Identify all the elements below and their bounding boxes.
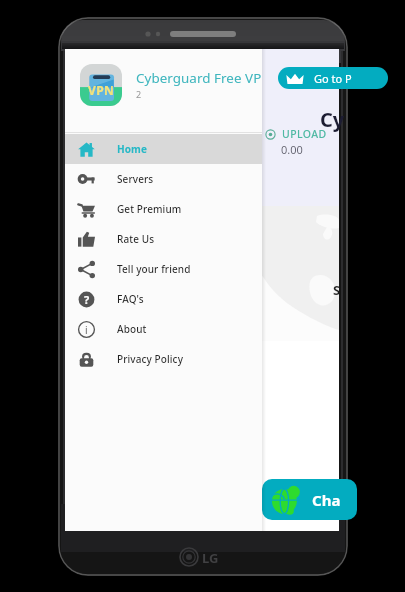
staticText: Home [117,142,148,156]
staticText: ? [84,292,90,307]
staticText: 2 [136,88,142,100]
staticText: S [333,281,341,299]
button[interactable]: Servers [65,164,262,194]
staticText: Go to P [314,71,352,86]
button[interactable]: Tell your friend [65,254,262,284]
staticText: UPLOAD [282,127,327,141]
staticText: About [117,322,147,336]
staticText: LG [202,549,219,567]
staticText: Privacy Policy [117,352,184,366]
staticText: Tell your friend [117,262,191,276]
staticText: Cy [320,106,345,133]
staticText: FAQ's [117,292,144,306]
staticText: Get Premium [117,202,182,216]
button[interactable]: Home [65,134,262,164]
button[interactable]: Go to P [278,67,388,89]
button[interactable]: Privacy Policy [65,344,262,374]
button[interactable]: Rate Us [65,224,262,254]
staticText: Rate Us [117,232,155,246]
button[interactable]: Cha [262,479,357,520]
staticText: VPN [88,82,115,98]
staticText: Servers [117,172,154,186]
staticText: 0.00 [281,142,303,157]
staticText: Cyberguard Free VPN [136,69,262,87]
staticText: Cha [312,490,341,510]
button[interactable]: Get Premium [65,194,262,224]
staticText: i [85,323,88,337]
button[interactable]: ? [65,284,262,314]
button[interactable]: i [65,314,262,344]
